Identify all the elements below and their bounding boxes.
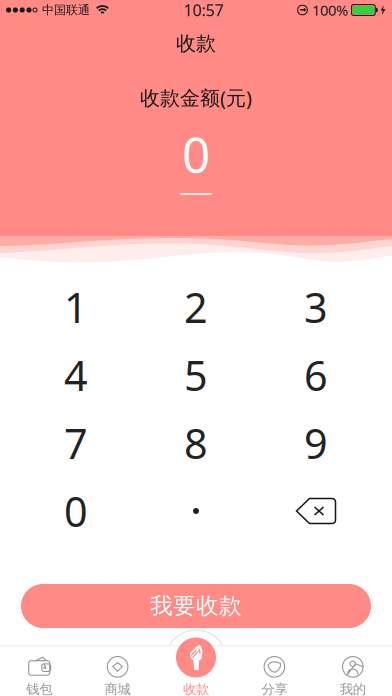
button[interactable]: 0 — [16, 477, 136, 545]
staticText: 收款金额(元) — [140, 84, 252, 111]
button[interactable]: 删除 — [256, 477, 376, 545]
button[interactable]: 2 — [136, 273, 256, 341]
button[interactable]: 4 — [16, 341, 136, 409]
staticText: 6 — [304, 347, 328, 403]
button[interactable]: 8 — [136, 409, 256, 477]
staticText: 100% — [312, 0, 348, 20]
staticText: 1 — [64, 279, 88, 335]
button[interactable]: 9 — [256, 409, 376, 477]
staticText: 10:57 — [183, 0, 223, 21]
staticText: 钱包 — [26, 681, 52, 696]
staticText: 5 — [184, 347, 208, 403]
staticText: 0 — [64, 483, 88, 539]
staticText: 我的 — [340, 681, 366, 696]
button[interactable]: 6 — [256, 341, 376, 409]
button[interactable]: 我要收款 — [21, 584, 371, 628]
button[interactable]: 7 — [16, 409, 136, 477]
button[interactable]: 3 — [256, 273, 376, 341]
staticText: 分享 — [261, 681, 287, 696]
staticText: 3 — [304, 279, 328, 335]
staticText: 中国联通 — [42, 2, 90, 17]
button[interactable]: 分享 — [235, 645, 314, 696]
button[interactable]: 收款 — [157, 645, 235, 696]
button[interactable]: 收款 — [176, 637, 216, 677]
button[interactable]: 我的 — [314, 645, 392, 696]
staticText: 我要收款 — [150, 592, 242, 620]
button[interactable]: 小数点 — [136, 477, 256, 545]
staticText: 0 — [182, 120, 210, 187]
button[interactable]: 钱包 — [0, 645, 78, 696]
staticText: 2 — [184, 279, 208, 335]
staticText: 7 — [64, 415, 88, 471]
staticText: 4 — [64, 347, 88, 403]
staticText: 8 — [184, 415, 208, 471]
staticText: 9 — [304, 415, 328, 471]
button[interactable]: 1 — [16, 273, 136, 341]
staticText: 收款 — [176, 31, 216, 56]
button[interactable]: 商城 — [78, 645, 157, 696]
button[interactable]: 5 — [136, 341, 256, 409]
staticText: 商城 — [105, 681, 131, 696]
staticText: 收款 — [183, 681, 209, 696]
